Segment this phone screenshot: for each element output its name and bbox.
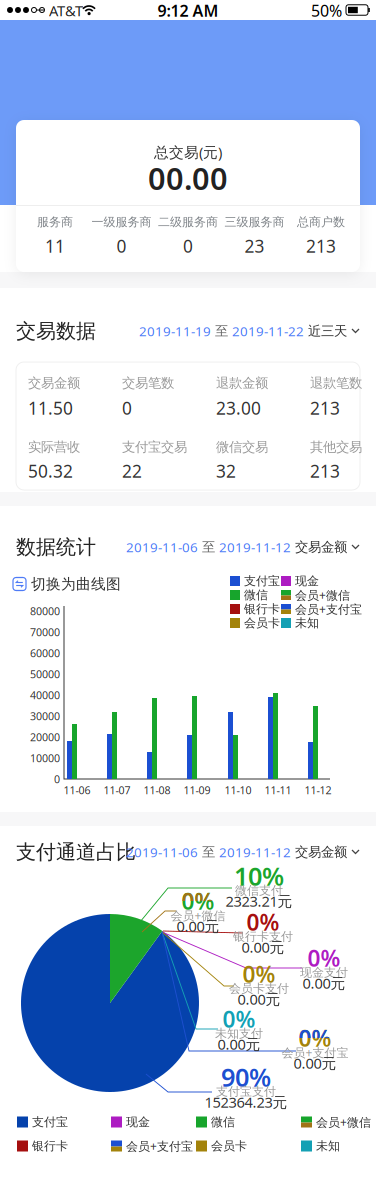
staticText: 2019-11-06 xyxy=(126,538,198,556)
staticText: 80000 xyxy=(30,604,60,618)
staticText: 2019-11-22 xyxy=(232,322,304,340)
button[interactable]: 2019-11-06 xyxy=(90,538,360,556)
staticText: 11-06 xyxy=(63,783,90,797)
staticText: AT&T xyxy=(49,1,83,20)
staticText: 未知支付 xyxy=(215,1026,263,1041)
staticText: 2019-11-19 xyxy=(139,322,211,340)
staticText: 0% xyxy=(242,959,275,989)
button[interactable]: 2019-11-06 xyxy=(90,843,360,861)
staticText: 0.00元 xyxy=(293,1053,336,1073)
staticText: 00.00 xyxy=(148,158,228,198)
staticText: 会员+支付宝 xyxy=(126,1138,193,1154)
staticText: 退款金额 xyxy=(216,375,268,391)
staticText: 总交易(元) xyxy=(154,142,222,162)
staticText: 213 xyxy=(310,396,340,419)
staticText: 交易金额 xyxy=(295,539,347,555)
staticText: 会员+支付宝 xyxy=(295,601,362,617)
staticText: 50% xyxy=(311,0,342,21)
staticText: 11-08 xyxy=(143,783,170,797)
staticText: 会员卡 xyxy=(211,1139,247,1153)
staticText: 90% xyxy=(221,1060,271,1094)
staticText: 未知 xyxy=(316,1139,340,1153)
staticText: 支付宝支付 xyxy=(216,1084,276,1099)
staticText: 现金 xyxy=(126,1115,150,1129)
staticText: 交易金额 xyxy=(28,375,80,391)
staticText: 20000 xyxy=(30,730,60,744)
staticText: 0 xyxy=(54,772,60,786)
button[interactable]: 切换为曲线图 xyxy=(13,575,121,593)
staticText: 152364.23元 xyxy=(204,1092,287,1112)
staticText: 30000 xyxy=(30,709,60,723)
staticText: 支付通道占比 xyxy=(16,840,136,864)
button[interactable]: 2019-11-19 xyxy=(90,322,360,340)
staticText: 退款笔数 xyxy=(310,375,362,391)
staticText: 60000 xyxy=(30,646,60,660)
staticText: 0% xyxy=(222,1004,255,1034)
staticText: 32 xyxy=(216,459,236,482)
staticText: 0.00元 xyxy=(217,1034,260,1054)
staticText: 0.00元 xyxy=(302,973,345,993)
staticText: 银行卡支付 xyxy=(233,929,293,944)
staticText: 至 xyxy=(202,844,215,860)
staticText: 213 xyxy=(310,459,340,482)
staticText: 0% xyxy=(298,1023,331,1053)
staticText: 交易数据 xyxy=(16,319,96,343)
staticText: 2323.21元 xyxy=(225,891,292,911)
staticText: 微信 xyxy=(244,588,268,602)
staticText: 70000 xyxy=(30,625,60,639)
staticText: 50.32 xyxy=(28,459,73,482)
staticText: 未知 xyxy=(295,616,319,630)
staticText: 0% xyxy=(307,943,340,973)
staticText: 微信 xyxy=(211,1115,235,1129)
staticText: 22 xyxy=(122,459,142,482)
staticText: 数据统计 xyxy=(16,535,96,559)
staticText: 0% xyxy=(298,1023,331,1053)
staticText: 现金支付 xyxy=(300,965,348,980)
staticText: 0 xyxy=(116,234,126,257)
staticText: 支付宝 xyxy=(32,1115,68,1129)
staticText: 2019-11-12 xyxy=(219,843,291,861)
staticText: 11.50 xyxy=(28,396,73,419)
staticText: 会员+微信 xyxy=(170,907,225,923)
staticText: 11-10 xyxy=(224,783,251,797)
staticText: 会员+微信 xyxy=(295,587,350,603)
staticText: 0% xyxy=(181,886,214,916)
staticText: 23.00 xyxy=(216,396,261,419)
staticText: 实际营收 xyxy=(28,439,80,455)
staticText: 2019-11-12 xyxy=(219,538,291,556)
staticText: 现金 xyxy=(295,574,319,588)
staticText: 交易金额 xyxy=(295,844,347,860)
staticText: 0% xyxy=(181,886,214,916)
staticText: 银行卡 xyxy=(32,1139,68,1153)
staticText: 0.00元 xyxy=(176,916,219,936)
staticText: 11-12 xyxy=(304,783,331,797)
staticText: 至 xyxy=(215,323,228,339)
staticText: 50000 xyxy=(30,667,60,681)
staticText: 会员卡支付 xyxy=(229,981,289,996)
staticText: 0% xyxy=(246,907,279,937)
staticText: 会员卡 xyxy=(244,616,280,630)
staticText: 10% xyxy=(234,859,284,893)
staticText: 11-09 xyxy=(183,783,210,797)
staticText: 支付宝交易 xyxy=(122,439,187,455)
staticText: 0 xyxy=(183,234,193,257)
staticText: 23 xyxy=(244,234,264,257)
staticText: 近三天 xyxy=(308,323,347,339)
staticText: 11-07 xyxy=(103,783,130,797)
staticText: 会员+微信 xyxy=(316,1114,371,1130)
staticText: 11 xyxy=(45,234,65,257)
staticText: 9:12 AM xyxy=(157,0,218,21)
staticText: 银行卡 xyxy=(244,602,280,616)
staticText: 交易笔数 xyxy=(122,375,174,391)
staticText: 0.00元 xyxy=(237,989,280,1009)
staticText: 微信支付 xyxy=(235,883,283,898)
staticText: 切换为曲线图 xyxy=(31,575,121,593)
staticText: 其他交易 xyxy=(310,439,362,455)
staticText: 二级服务商 xyxy=(158,215,218,229)
staticText: 40000 xyxy=(30,688,60,702)
staticText: 支付宝 xyxy=(244,574,280,588)
staticText: 微信交易 xyxy=(216,439,268,455)
staticText: 三级服务商 xyxy=(224,215,284,229)
staticText: 服务商 xyxy=(37,215,73,229)
staticText: 总商户数 xyxy=(297,215,345,229)
